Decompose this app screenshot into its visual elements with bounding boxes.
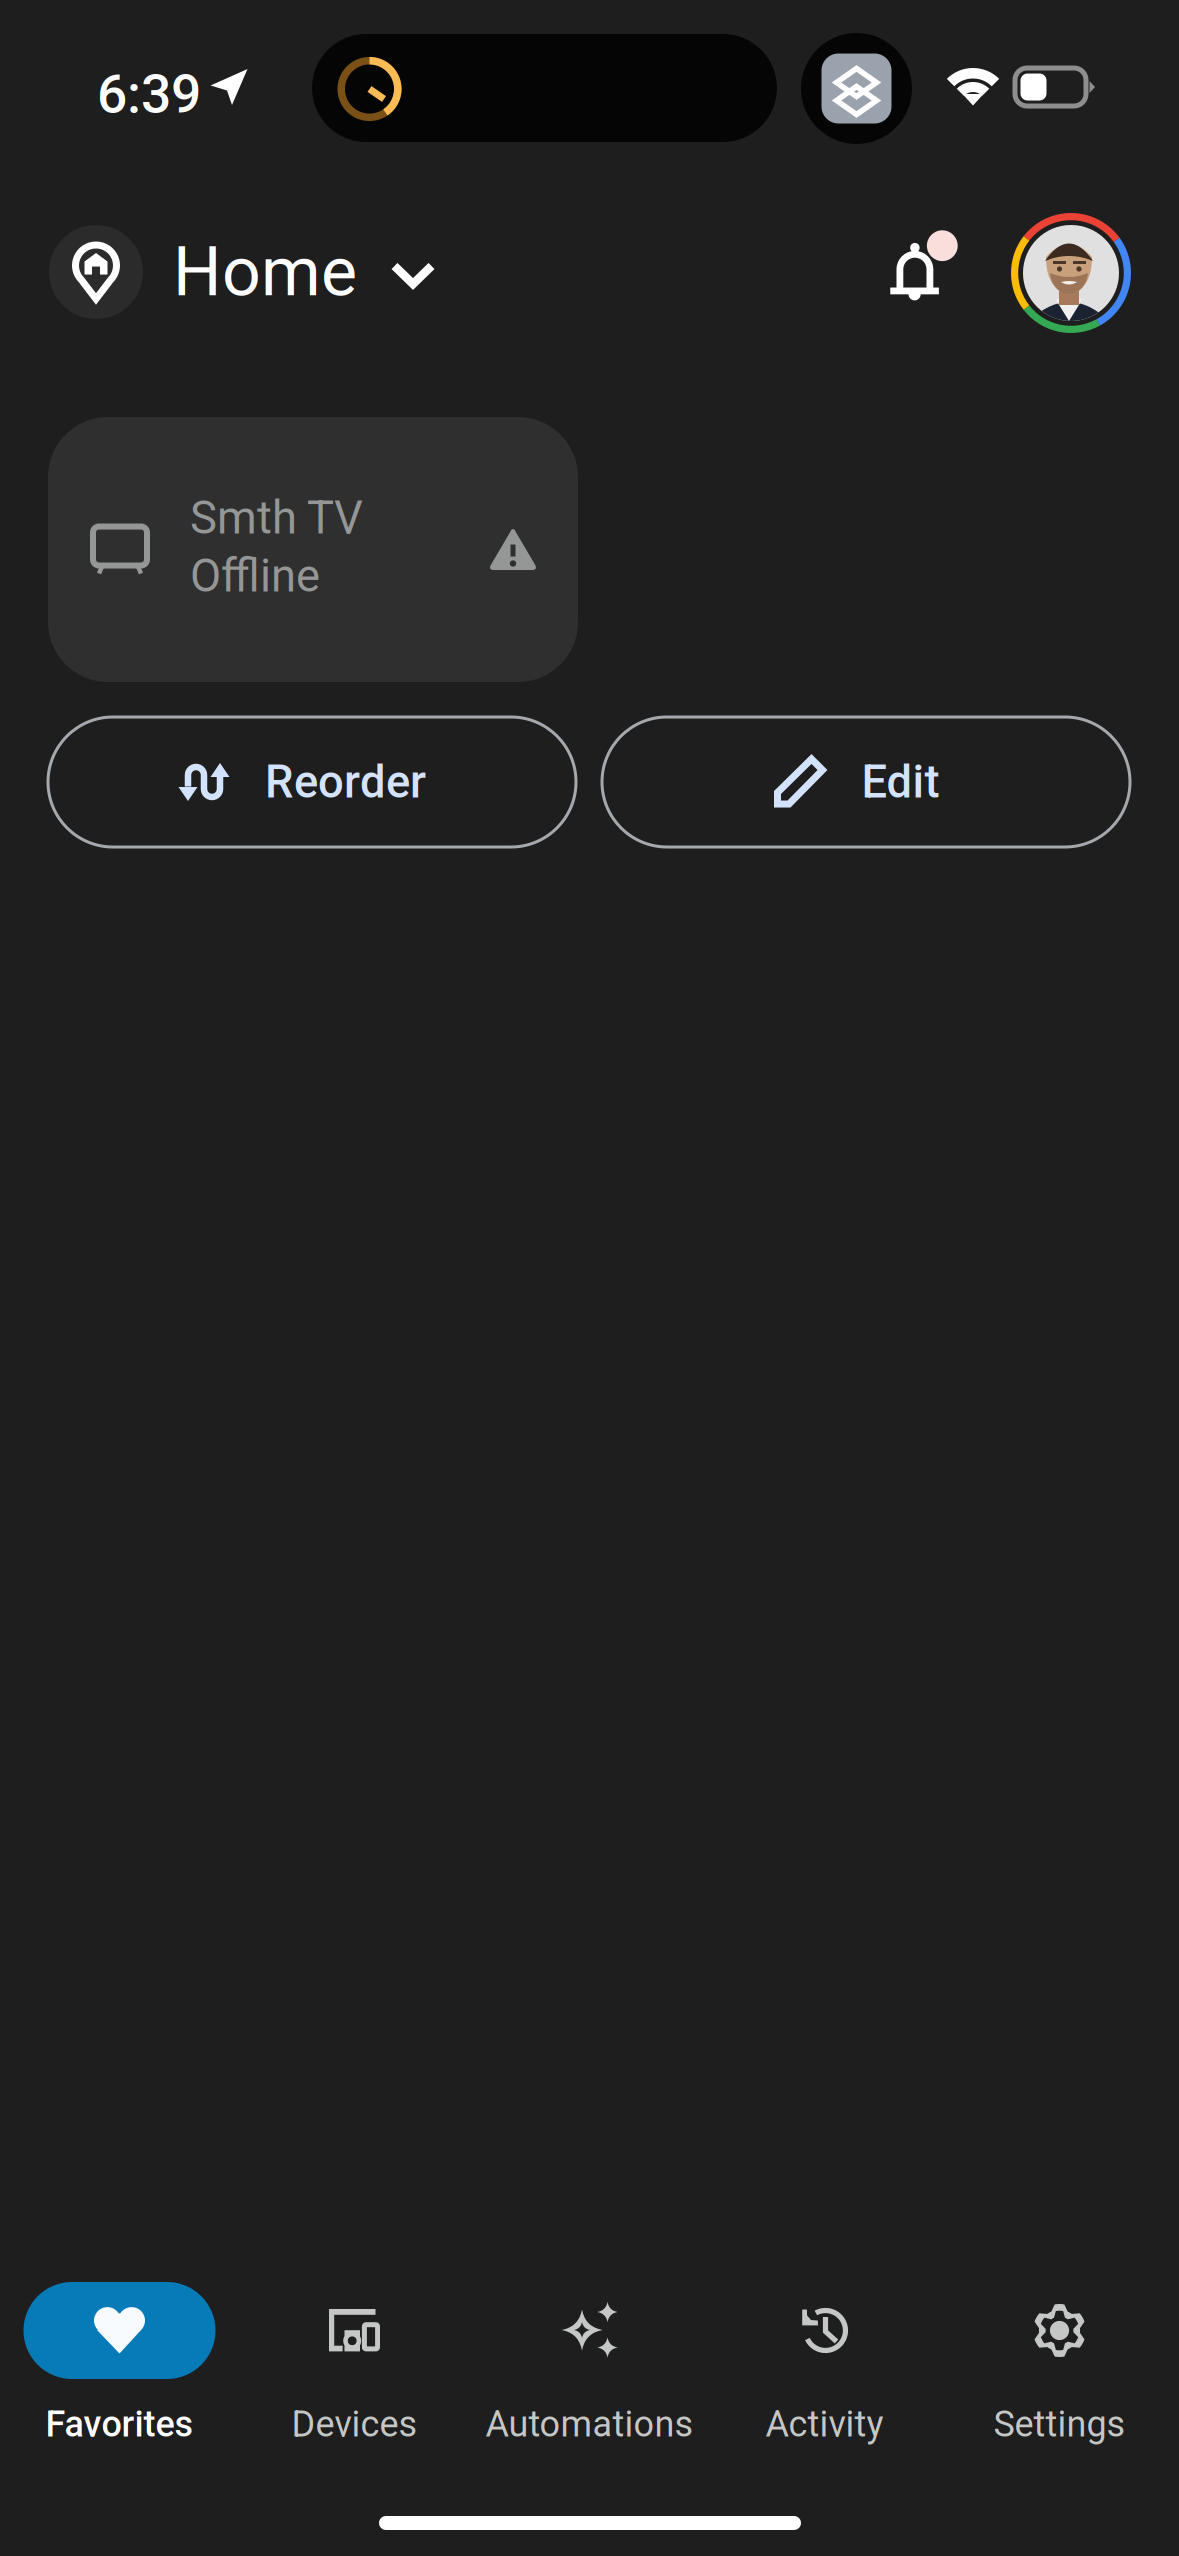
staticText: Offline xyxy=(190,549,320,603)
button[interactable]: Devices xyxy=(237,2282,472,2452)
button[interactable]: Account xyxy=(1011,213,1131,333)
staticText: Automations xyxy=(485,2403,693,2445)
staticText: Favorites xyxy=(45,2403,193,2445)
button[interactable]: Smth TV xyxy=(48,417,578,682)
button[interactable]: Reorder xyxy=(48,717,576,847)
button[interactable]: Home xyxy=(49,225,436,319)
staticText: Devices xyxy=(291,2403,417,2445)
button[interactable]: Settings xyxy=(942,2282,1177,2452)
staticText: Edit xyxy=(861,755,939,808)
button[interactable]: Favorites xyxy=(2,2282,237,2452)
staticText: 6:39 xyxy=(97,63,201,125)
button[interactable]: Automations xyxy=(472,2282,707,2452)
staticText: Settings xyxy=(993,2403,1125,2445)
staticText: Home xyxy=(173,232,357,312)
staticText: Activity xyxy=(765,2403,883,2445)
button[interactable]: Edit xyxy=(602,717,1130,847)
button[interactable]: Notifications xyxy=(882,222,969,314)
staticText: Reorder xyxy=(265,755,426,808)
button[interactable]: Activity xyxy=(707,2282,942,2452)
staticText: Smth TV xyxy=(190,491,363,544)
